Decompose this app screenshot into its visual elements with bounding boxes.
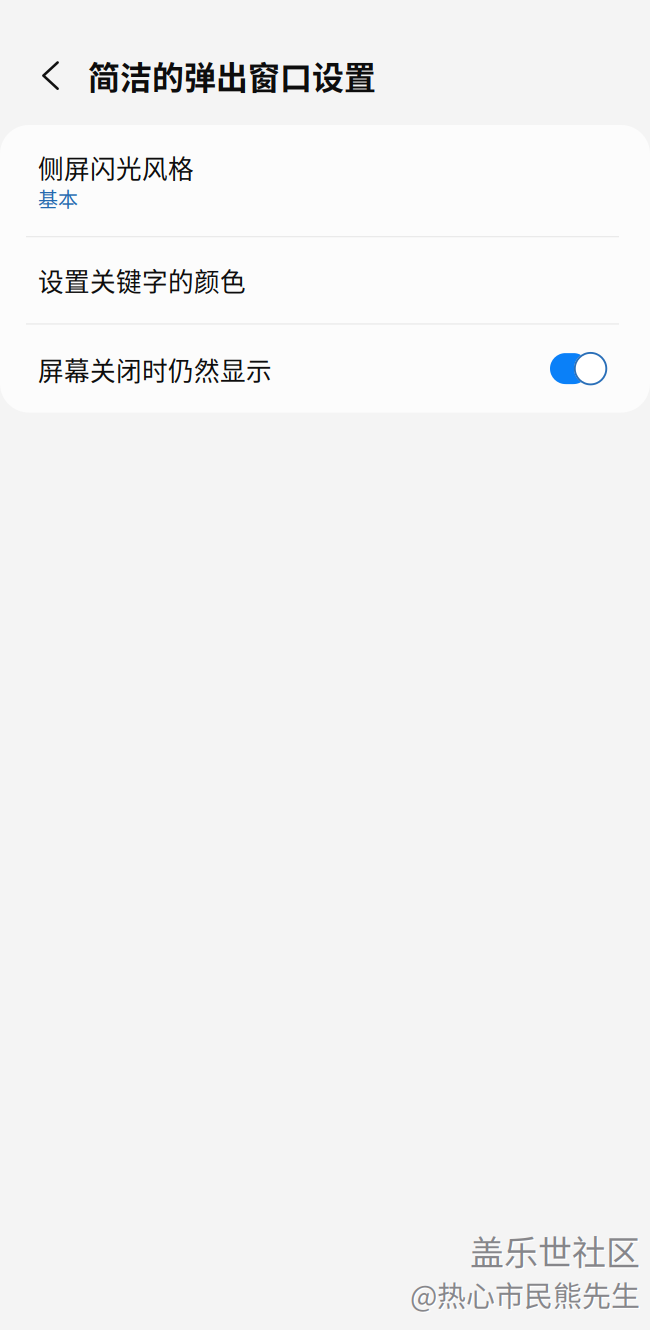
button[interactable]: 设置关键字的颜色 [0, 237, 650, 323]
staticText: 盖乐世社区 [470, 1226, 640, 1275]
button[interactable]: 屏幕关闭时仍然显示 [550, 352, 608, 386]
button[interactable]: 屏幕关闭时仍然显示 [0, 325, 650, 413]
staticText: @热心市民熊先生 [411, 1274, 641, 1316]
staticText: 侧屏闪光风格 [38, 149, 194, 186]
staticText: 简洁的弹出窗口设置 [88, 52, 376, 98]
staticText: 盖乐世社区 [471, 1227, 641, 1276]
button[interactable]: 侧屏闪光风格 [0, 125, 650, 236]
staticText: 设置关键字的颜色 [38, 262, 246, 299]
staticText: @热心市民熊先生 [410, 1273, 640, 1315]
staticText: 基本 [38, 184, 78, 213]
button[interactable]: Back [26, 40, 80, 110]
staticText: 屏幕关闭时仍然显示 [38, 351, 272, 388]
